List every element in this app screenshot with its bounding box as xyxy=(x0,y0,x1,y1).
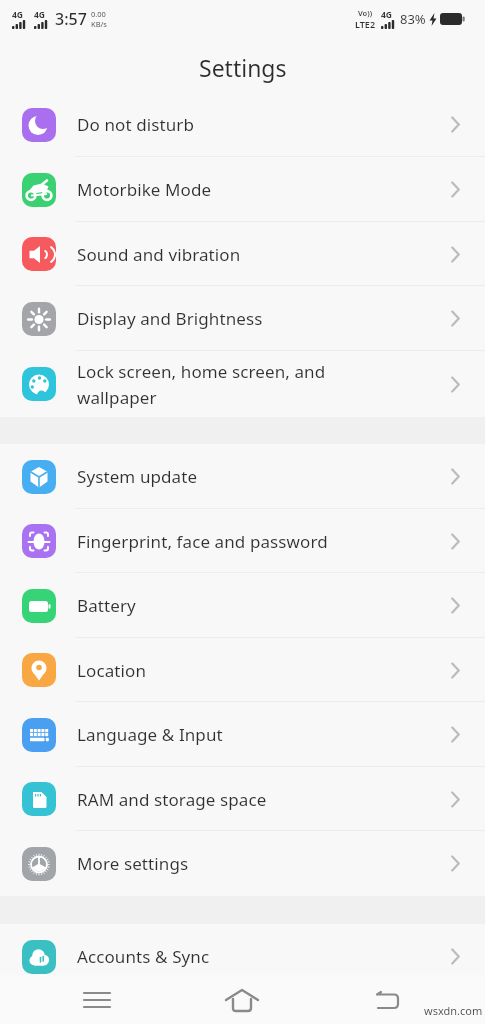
staticText: Do not disturb xyxy=(77,113,451,136)
button[interactable]: Display and Brightness xyxy=(0,286,485,351)
staticText: Display and Brightness xyxy=(77,307,451,330)
staticText: 4G xyxy=(34,9,46,21)
staticText: 4G xyxy=(381,9,393,21)
button[interactable]: Accounts & Sync xyxy=(0,924,485,989)
staticText: wsxdn.com xyxy=(424,1003,483,1018)
button[interactable]: Fingerprint, face and password xyxy=(0,509,485,573)
staticText: Language & Input xyxy=(77,723,451,746)
button[interactable]: Language & Input xyxy=(0,702,485,767)
staticText: Sound and vibration xyxy=(77,243,451,266)
button[interactable]: Sound and vibration xyxy=(0,222,485,286)
button[interactable]: Location xyxy=(0,638,485,702)
button[interactable]: Lock screen, home screen, and wallpaper xyxy=(0,351,485,417)
button[interactable]: Do not disturb xyxy=(0,92,485,157)
button[interactable]: RAM and storage space xyxy=(0,767,485,831)
staticText: More settings xyxy=(77,852,451,875)
button[interactable] xyxy=(169,975,315,1024)
staticText: Battery xyxy=(77,594,451,617)
button[interactable] xyxy=(315,975,461,1024)
staticText: RAM and storage space xyxy=(77,788,451,811)
staticText: Location xyxy=(77,659,451,682)
staticText: 83% xyxy=(400,10,426,28)
staticText: LTE2 xyxy=(355,18,376,30)
staticText: KB/s xyxy=(91,19,107,29)
button[interactable]: System update xyxy=(0,444,485,509)
staticText: Fingerprint, face and password xyxy=(77,530,451,553)
staticText: Lock screen, home screen, and wallpaper xyxy=(77,360,451,409)
staticText: Accounts & Sync xyxy=(77,945,451,968)
staticText: 3:57 xyxy=(55,8,87,30)
button[interactable]: Battery xyxy=(0,573,485,638)
staticText: 4G xyxy=(12,9,24,21)
staticText: 0.00 xyxy=(91,9,106,19)
staticText: System update xyxy=(77,465,451,488)
staticText: Vo)) xyxy=(358,8,373,18)
staticText: Settings xyxy=(199,52,287,83)
button[interactable] xyxy=(24,975,169,1024)
staticText: Motorbike Mode xyxy=(77,178,451,201)
button[interactable]: Motorbike Mode xyxy=(0,157,485,222)
button[interactable]: More settings xyxy=(0,831,485,896)
